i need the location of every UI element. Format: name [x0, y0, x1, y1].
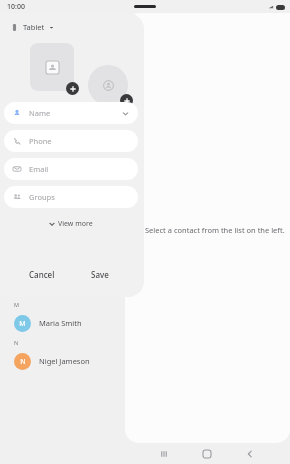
button[interactable]: Add — [120, 94, 133, 107]
button[interactable]: Tablet — [8, 19, 57, 35]
staticText: Tablet — [23, 22, 45, 32]
button[interactable]: Save — [79, 264, 121, 285]
staticText: Nigel Jameson — [39, 356, 90, 366]
button[interactable]: M — [0, 310, 125, 336]
button[interactable]: Add photo — [30, 43, 74, 91]
staticText: Email — [29, 164, 49, 174]
button[interactable]: Add avatar — [88, 65, 128, 105]
button[interactable]: Name — [4, 102, 138, 124]
staticText: Phone — [29, 136, 52, 146]
staticText: 10:00 — [7, 2, 25, 12]
staticText: Select a contact from the list on the le… — [145, 225, 285, 235]
button[interactable]: Recents — [153, 443, 175, 464]
staticText: Save — [91, 269, 109, 280]
staticText: Cancel — [29, 269, 55, 280]
staticText: M — [19, 319, 26, 329]
button[interactable]: Cancel — [17, 264, 67, 285]
button[interactable]: N — [0, 348, 125, 374]
button[interactable]: Groups — [4, 186, 138, 208]
staticText: Maria Smith — [39, 318, 82, 328]
staticText: M — [14, 301, 19, 308]
button[interactable]: Add — [66, 82, 79, 95]
staticText: N — [14, 339, 19, 346]
button[interactable]: View more — [43, 216, 99, 232]
staticText: Name — [29, 108, 51, 118]
button[interactable]: Email — [4, 158, 138, 180]
button[interactable]: Home — [196, 443, 218, 464]
staticText: View more — [58, 219, 93, 229]
staticText: Groups — [29, 192, 55, 202]
staticText: N — [20, 357, 26, 367]
button[interactable]: Phone — [4, 130, 138, 152]
button[interactable]: Back — [239, 443, 261, 464]
